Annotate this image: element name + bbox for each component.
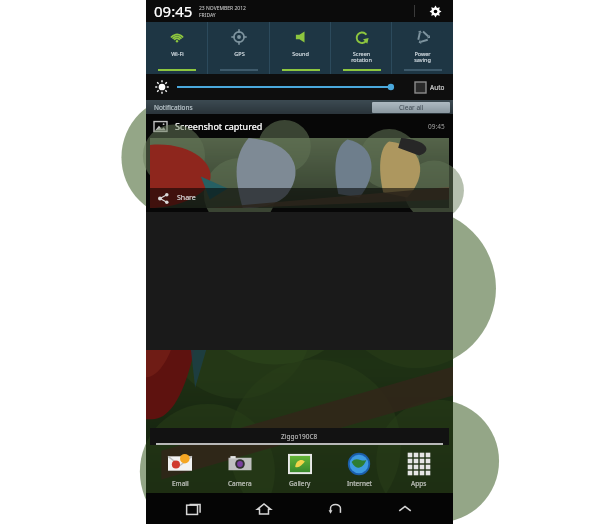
button[interactable]: Share bbox=[150, 188, 449, 208]
staticText: Auto bbox=[430, 83, 445, 92]
staticText: Internet bbox=[347, 479, 372, 488]
button[interactable]: Clear all bbox=[372, 102, 450, 113]
staticText: Wi-Fi bbox=[171, 50, 184, 57]
staticText: Camera bbox=[228, 479, 252, 488]
button[interactable]: Recent apps bbox=[172, 493, 216, 524]
button[interactable]: Camera bbox=[214, 451, 266, 488]
button[interactable]: Gallery bbox=[274, 451, 326, 488]
staticText: FRIDAY bbox=[199, 12, 216, 19]
staticText: Gallery bbox=[289, 479, 311, 488]
button[interactable]: Settings bbox=[425, 1, 445, 21]
staticText: Sound bbox=[292, 50, 309, 57]
button[interactable]: Back bbox=[313, 493, 357, 524]
staticText: Ziggo190C8 bbox=[281, 432, 318, 441]
staticText: 23 NOVEMBER 2012 bbox=[199, 5, 246, 12]
staticText: Share bbox=[177, 193, 196, 203]
button[interactable]: Apps bbox=[393, 451, 445, 488]
button[interactable]: Screenshot captured bbox=[146, 114, 453, 350]
button[interactable]: Internet bbox=[333, 451, 385, 488]
staticText: 09:45 bbox=[428, 122, 445, 131]
button[interactable]: GPS bbox=[208, 22, 270, 74]
button[interactable]: Wi-Fi bbox=[146, 22, 208, 74]
staticText: Power saving bbox=[414, 50, 431, 64]
staticText: Screenshot captured bbox=[175, 120, 263, 132]
button[interactable]: Brightness bbox=[154, 79, 170, 95]
button[interactable]: Auto bbox=[415, 82, 445, 93]
button[interactable]: Hide bbox=[383, 493, 427, 524]
button[interactable] bbox=[177, 79, 407, 95]
staticText: 09:45 bbox=[154, 1, 193, 21]
button[interactable]: Home bbox=[242, 493, 286, 524]
button[interactable]: Power saving bbox=[392, 22, 453, 74]
button[interactable]: Sound bbox=[270, 22, 331, 74]
staticText: Email bbox=[172, 479, 189, 488]
staticText: Screen rotation bbox=[351, 50, 372, 64]
staticText: Apps bbox=[411, 479, 427, 488]
button[interactable]: Email bbox=[154, 451, 206, 488]
button[interactable]: Screen rotation bbox=[331, 22, 392, 74]
staticText: GPS bbox=[234, 50, 245, 57]
staticText: Clear all bbox=[399, 103, 424, 112]
staticText: Notifications bbox=[154, 103, 193, 112]
